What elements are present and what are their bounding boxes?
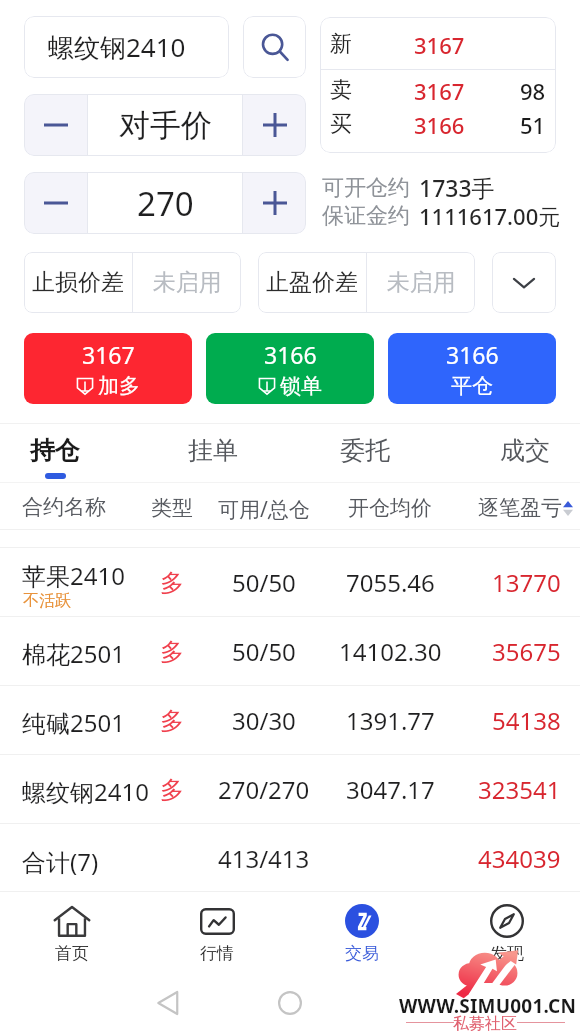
staticText: 合计(7) <box>22 845 99 878</box>
button[interactable]: Home <box>260 973 320 1033</box>
staticText: 1111617.00元 <box>419 201 561 231</box>
staticText: 14102.30 <box>339 635 442 668</box>
staticText: 54138 <box>492 704 561 737</box>
staticText: 1391.77 <box>346 704 435 737</box>
staticText: 止损价差 <box>32 268 124 297</box>
staticText: 持仓 <box>30 435 80 466</box>
staticText: 3167 <box>82 339 135 370</box>
staticText: 3166 <box>264 339 317 370</box>
staticText: 螺纹钢2410 <box>22 775 149 808</box>
staticText: 98 <box>520 76 546 106</box>
staticText: 270 <box>137 181 194 226</box>
staticText: 成交 <box>500 435 550 466</box>
button[interactable]: 止盈价差 <box>258 252 475 313</box>
staticText: 30/30 <box>232 704 296 737</box>
staticText: 纯碱2501 <box>22 706 125 739</box>
staticText: 434039 <box>478 842 561 875</box>
button[interactable]: 棉花2501 <box>0 617 580 686</box>
staticText: 苹果2410 <box>22 559 125 592</box>
staticText: 棉花2501 <box>22 637 125 670</box>
staticText: 50/50 <box>232 635 296 668</box>
staticText: 51 <box>520 110 546 140</box>
staticText: 锁单 <box>280 373 322 399</box>
staticText: 3167 <box>414 76 465 106</box>
staticText: 7055.46 <box>346 566 435 599</box>
button[interactable]: Search <box>243 16 306 78</box>
button[interactable]: 交易 <box>302 897 422 973</box>
staticText: 挂单 <box>188 435 238 466</box>
staticText: 未启用 <box>153 268 222 297</box>
button[interactable]: 苹果2410 <box>0 548 580 617</box>
staticText: 不活跃 <box>23 591 71 611</box>
button[interactable]: 纯碱2501 <box>0 686 580 755</box>
staticText: 委托 <box>340 435 390 466</box>
staticText: 类型 <box>151 495 193 521</box>
staticText: 合约名称 <box>22 494 106 520</box>
button[interactable]: 止损价差 <box>24 252 241 313</box>
button[interactable]: 成交 <box>470 435 580 485</box>
staticText: 行情 <box>200 943 234 964</box>
staticText: 首页 <box>55 943 89 964</box>
staticText: 多 <box>160 775 184 805</box>
button[interactable]: Increase <box>243 172 306 234</box>
staticText: 交易 <box>345 943 379 964</box>
staticText: 保证金约 <box>322 202 410 230</box>
staticText: 私募社区 <box>453 1014 517 1034</box>
staticText: 加多 <box>98 373 140 399</box>
button[interactable]: 螺纹钢2410 <box>24 16 229 78</box>
button[interactable]: Increase <box>243 94 306 156</box>
staticText: 323541 <box>478 773 561 806</box>
button[interactable]: 螺纹钢2410 <box>0 755 580 824</box>
button[interactable]: Back <box>138 973 198 1033</box>
staticText: 可用/总仓 <box>218 495 310 524</box>
staticText: 对手价 <box>119 106 212 145</box>
staticText: 3166 <box>446 339 499 370</box>
staticText: 平仓 <box>451 373 493 399</box>
button[interactable]: Decrease <box>24 172 87 234</box>
staticText: 发现 <box>490 943 524 964</box>
staticText: 逐笔盈亏 <box>478 495 562 521</box>
button[interactable]: 挂单 <box>158 435 268 485</box>
staticText: 3167 <box>414 30 465 60</box>
staticText: WWW.SIMU001.CN <box>399 993 577 1019</box>
button[interactable]: 发现 <box>447 897 567 973</box>
staticText: 多 <box>160 706 184 736</box>
staticText: 3166 <box>414 110 465 140</box>
staticText: 螺纹钢2410 <box>48 29 186 65</box>
button[interactable]: 委托 <box>310 435 420 485</box>
staticText: 35675 <box>492 635 561 668</box>
staticText: 413/413 <box>218 842 310 875</box>
staticText: 多 <box>160 568 184 598</box>
button[interactable]: 3166 <box>206 333 374 404</box>
staticText: 多 <box>160 637 184 667</box>
staticText: 1733手 <box>419 172 495 203</box>
staticText: 开仓均价 <box>348 495 432 521</box>
staticText: 新 <box>330 30 352 58</box>
staticText: 270/270 <box>218 773 310 806</box>
staticText: 止盈价差 <box>266 268 358 297</box>
staticText: 买 <box>330 110 352 138</box>
button[interactable]: 持仓 <box>0 435 110 485</box>
button[interactable]: 行情 <box>157 897 277 973</box>
button[interactable]: 3166 <box>388 333 556 404</box>
staticText: 13770 <box>492 566 561 599</box>
button[interactable]: Decrease <box>24 94 87 156</box>
staticText: 卖 <box>330 76 352 104</box>
staticText: 50/50 <box>232 566 296 599</box>
staticText: 可开仓约 <box>322 174 410 202</box>
button[interactable]: 首页 <box>12 897 132 973</box>
button[interactable]: Expand more <box>492 252 556 313</box>
button[interactable]: 合计(7) <box>0 824 580 893</box>
button[interactable]: 3167 <box>24 333 192 404</box>
staticText: 未启用 <box>387 268 456 297</box>
staticText: 3047.17 <box>346 773 435 806</box>
